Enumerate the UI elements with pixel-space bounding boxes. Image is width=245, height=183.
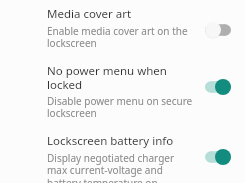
staticText: Lockscreen battery info bbox=[47, 133, 174, 149]
staticText: Media cover art bbox=[47, 6, 132, 22]
button[interactable]: Toggle media cover art bbox=[201, 19, 235, 41]
staticText: Enable media cover art on the lockscreen bbox=[47, 24, 195, 50]
button[interactable]: Toggle no power menu when locked bbox=[201, 76, 235, 98]
staticText: No power menu when locked bbox=[47, 63, 195, 92]
button[interactable]: Media cover art bbox=[0, 6, 245, 50]
staticText: Display negotiated charger max current-v… bbox=[47, 151, 195, 183]
button[interactable]: Lockscreen battery info bbox=[0, 133, 245, 183]
button[interactable]: Toggle lockscreen battery info bbox=[201, 146, 235, 168]
button[interactable]: No power menu when locked bbox=[0, 63, 245, 120]
staticText: Disable power menu on secure lockscreen bbox=[47, 94, 195, 120]
